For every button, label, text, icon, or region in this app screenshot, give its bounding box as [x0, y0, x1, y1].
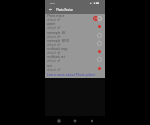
button[interactable]: multitask copy	[45, 47, 105, 55]
staticText: default: off	[47, 51, 61, 55]
button[interactable]: resample WHD	[45, 39, 105, 47]
staticText: size	[47, 64, 53, 68]
button[interactable]: Photo resize	[45, 14, 105, 22]
button[interactable]: Back	[89, 118, 95, 124]
button[interactable]: Recents	[56, 118, 62, 124]
button[interactable]: size	[45, 64, 105, 72]
button[interactable]: Home	[72, 118, 78, 124]
staticText: Photo resize	[47, 14, 65, 18]
button[interactable]: watch	[45, 22, 105, 30]
staticText: Photo Resize	[56, 8, 73, 12]
staticText: default: off	[47, 26, 61, 30]
button[interactable]: Back	[48, 7, 53, 12]
staticText: default: off	[47, 59, 61, 63]
staticText: 9:41	[50, 1, 55, 4]
staticText: multitask art	[47, 55, 65, 59]
staticText: resample WHD	[47, 39, 69, 43]
staticText: Learn more about Photo picker	[47, 72, 96, 76]
staticText: default: off	[47, 18, 61, 22]
button[interactable]: resample 4K	[45, 31, 105, 39]
staticText: default: off	[47, 68, 61, 72]
staticText: watch	[47, 22, 56, 26]
staticText: resample 4K	[47, 31, 66, 35]
button[interactable]: multitask art	[45, 55, 105, 63]
button[interactable]: Learn more about Photo picker	[45, 72, 105, 76]
staticText: default: off	[47, 43, 61, 47]
staticText: default: off	[47, 35, 61, 39]
staticText: multitask copy	[47, 47, 68, 51]
